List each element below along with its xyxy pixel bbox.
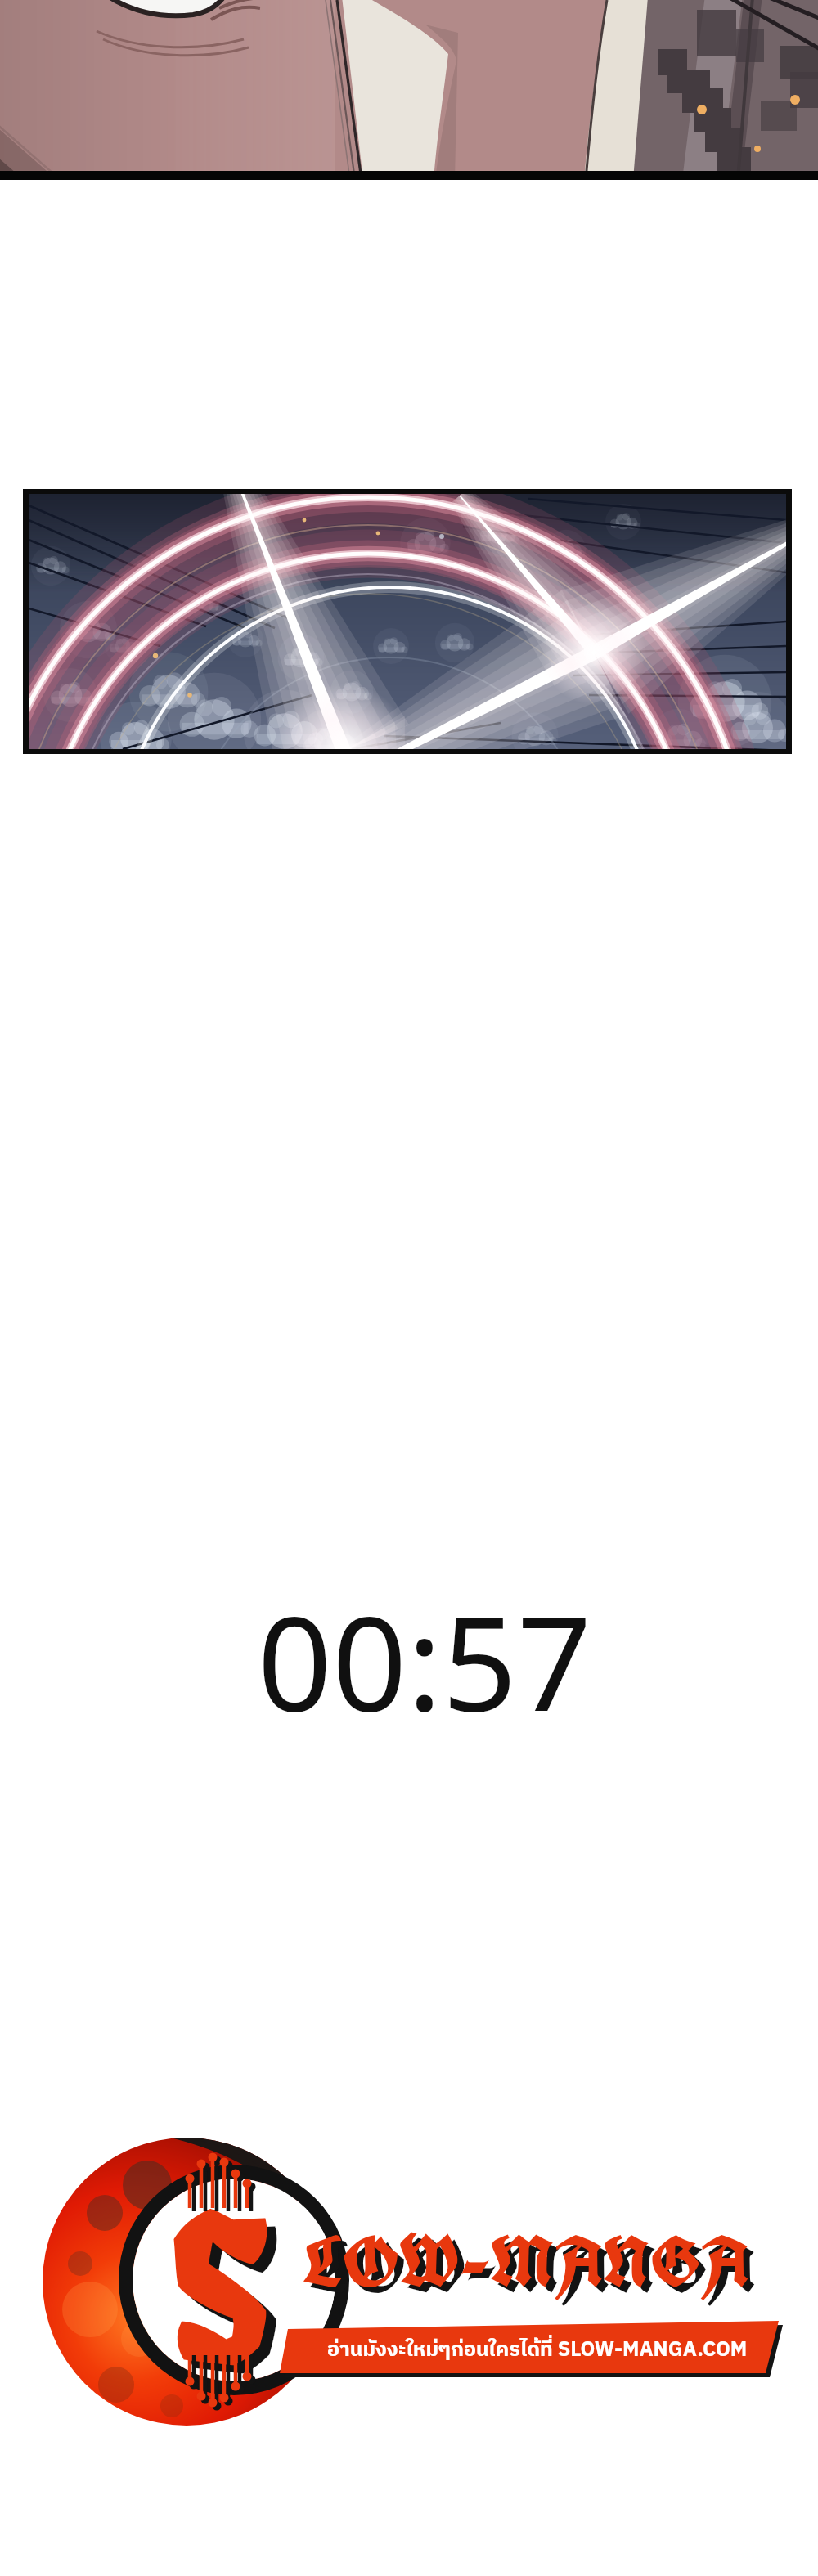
staticText: อ่านมังงะใหม่ๆก่อนใครได้ที่ SLOW-MANGA.C… xyxy=(327,2333,748,2367)
staticText: LOW-MANGA xyxy=(303,2215,749,2308)
staticText: LOW-MANGA xyxy=(309,2221,756,2313)
button[interactable]: Manga chapter page xyxy=(0,0,818,2576)
staticText: S xyxy=(167,2161,272,2417)
staticText: 00:57 xyxy=(16,1571,818,1749)
staticText: S xyxy=(177,2170,282,2426)
